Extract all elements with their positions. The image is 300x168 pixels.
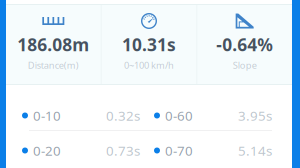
button[interactable]: 0-10 — [22, 101, 140, 130]
staticText: 0-70 — [165, 142, 193, 159]
staticText: Slope — [233, 59, 257, 71]
button[interactable]: 0-60 — [154, 101, 272, 130]
button[interactable]: 186.08m — [6, 5, 101, 84]
button[interactable]: 10.31s — [102, 5, 196, 84]
staticText: 5.14s — [238, 142, 272, 159]
button[interactable]: -0.64% — [197, 5, 292, 84]
staticText: -0.64% — [216, 33, 273, 56]
staticText: 0.32s — [106, 107, 140, 124]
button[interactable]: 0-20 — [22, 131, 140, 168]
button[interactable]: 0-70 — [154, 131, 272, 168]
staticText: 0-20 — [33, 142, 61, 159]
staticText: 0~100 km/h — [124, 59, 174, 71]
staticText: 10.31s — [122, 33, 176, 56]
staticText: 186.08m — [17, 33, 89, 56]
staticText: 3.95s — [238, 107, 272, 124]
staticText: Distance(m) — [28, 59, 79, 71]
staticText: 0-60 — [165, 107, 193, 124]
staticText: 0-10 — [33, 107, 61, 124]
staticText: 0.73s — [106, 142, 140, 159]
